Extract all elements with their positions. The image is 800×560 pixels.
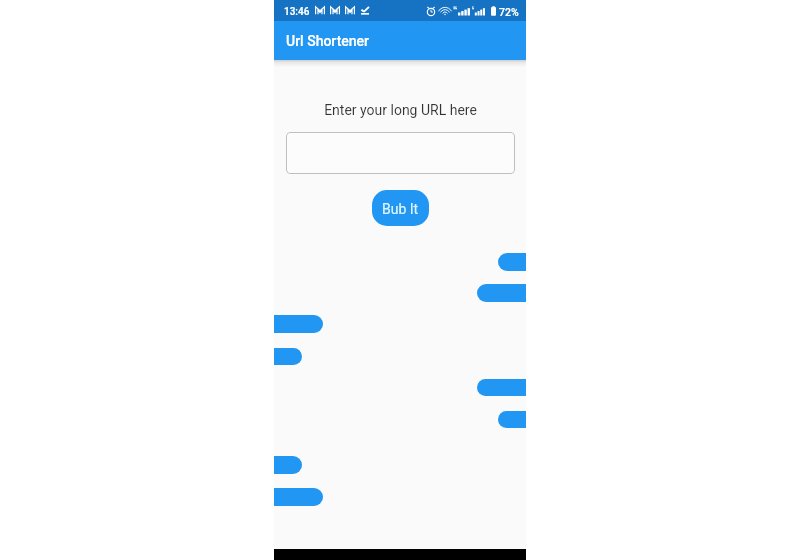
other: Gmail notification	[345, 6, 355, 15]
other: Download complete	[360, 6, 370, 15]
other: Battery	[491, 6, 496, 16]
other: Wi-Fi	[440, 7, 450, 16]
other: Mobile signal SIM 2	[468, 6, 485, 16]
button[interactable]: Bub It	[372, 190, 429, 226]
staticText: Url Shortener	[286, 33, 370, 49]
staticText: 13:46	[284, 6, 310, 18]
other: Mobile signal SIM 1	[450, 6, 470, 16]
button[interactable]: Long URL input field	[286, 132, 515, 174]
staticText: Enter your long URL here	[324, 102, 477, 118]
staticText: Bub It	[382, 201, 419, 217]
other: Gmail notification	[330, 6, 340, 15]
other: Alarm set	[427, 6, 435, 16]
other: Gmail notification	[315, 6, 325, 15]
staticText: 72%	[499, 6, 519, 18]
